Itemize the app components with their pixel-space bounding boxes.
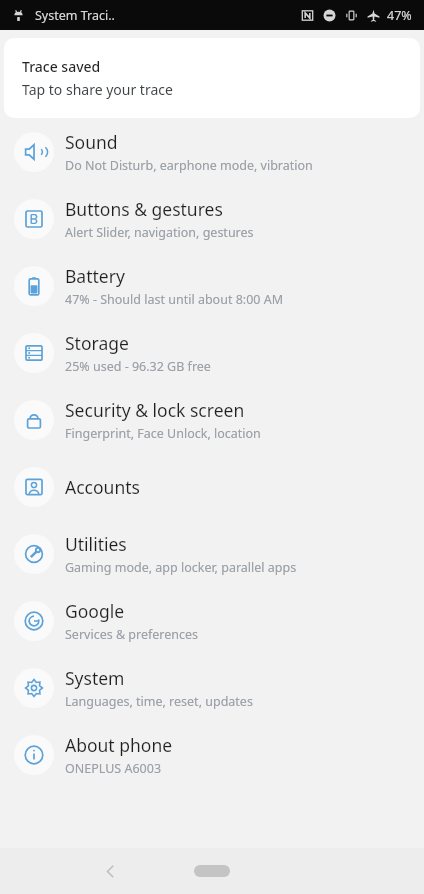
- button[interactable]: About phone: [0, 721, 424, 788]
- staticText: 47%: [387, 7, 412, 24]
- staticText: Buttons & gestures: [65, 197, 223, 221]
- staticText: Gaming mode, app locker, parallel apps: [65, 559, 297, 576]
- staticText: Tap to share your trace: [22, 80, 173, 99]
- staticText: System: [65, 666, 125, 690]
- staticText: Services & preferences: [65, 626, 199, 643]
- button[interactable]: Back: [88, 849, 132, 893]
- staticText: Sound: [65, 130, 118, 154]
- button[interactable]: Accounts: [0, 453, 424, 520]
- staticText: 25% used - 96.32 GB free: [65, 358, 211, 375]
- staticText: Security & lock screen: [65, 398, 245, 422]
- staticText: Fingerprint, Face Unlock, location: [65, 425, 261, 442]
- button[interactable]: System: [0, 654, 424, 721]
- staticText: 47% - Should last until about 8:00 AM: [65, 291, 284, 308]
- button[interactable]: Storage: [0, 319, 424, 386]
- staticText: Alert Slider, navigation, gestures: [65, 224, 254, 241]
- staticText: ONEPLUS A6003: [65, 760, 162, 777]
- staticText: Google: [65, 599, 125, 623]
- staticText: Accounts: [65, 475, 140, 499]
- staticText: System Traci..: [35, 7, 115, 24]
- button[interactable]: Utilities: [0, 520, 424, 587]
- button[interactable]: Trace saved: [4, 38, 420, 118]
- staticText: Languages, time, reset, updates: [65, 693, 253, 710]
- button[interactable]: Battery: [0, 252, 424, 319]
- button[interactable]: Sound: [0, 118, 424, 185]
- button[interactable]: Google: [0, 587, 424, 654]
- button[interactable]: Security & lock screen: [0, 386, 424, 453]
- staticText: Do Not Disturb, earphone mode, vibration: [65, 157, 313, 174]
- staticText: About phone: [65, 733, 173, 757]
- staticText: Trace saved: [22, 57, 101, 76]
- button[interactable]: Home: [194, 865, 230, 877]
- staticText: Storage: [65, 331, 129, 355]
- button[interactable]: Buttons & gestures: [0, 185, 424, 252]
- staticText: Battery: [65, 264, 125, 288]
- staticText: Utilities: [65, 532, 127, 556]
